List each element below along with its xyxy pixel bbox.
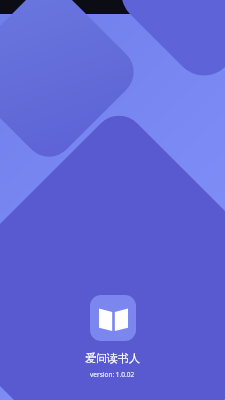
staticText: version: 1.0.02 [90,370,135,379]
staticText: 爱问读书人 [85,351,140,365]
button[interactable] [90,295,136,341]
